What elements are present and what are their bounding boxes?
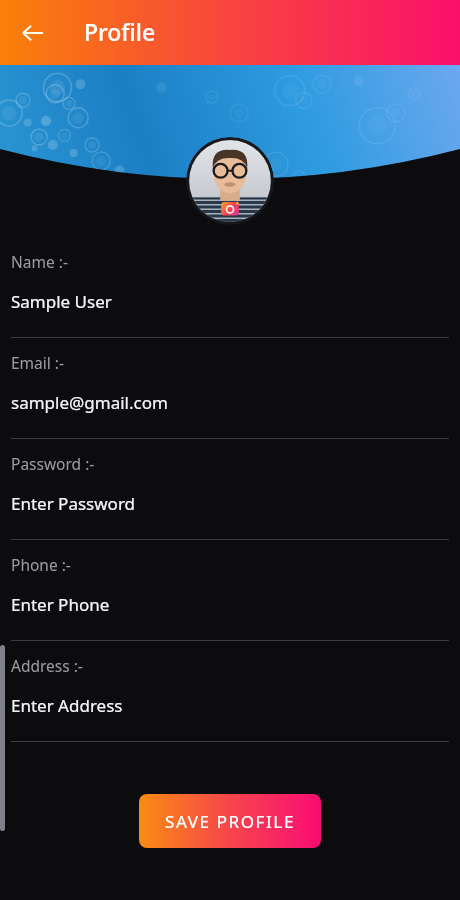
staticText: SAVE PROFILE [165, 810, 295, 833]
button[interactable]: Address :- [0, 655, 460, 756]
button[interactable]: Email :- [0, 352, 460, 453]
staticText: Sample User [11, 290, 112, 313]
button[interactable]: Back [12, 12, 54, 54]
button[interactable]: Phone :- [0, 554, 460, 655]
staticText: Phone :- [11, 554, 71, 575]
button[interactable]: Password :- [0, 453, 460, 554]
staticText: Profile [84, 16, 156, 47]
staticText: Password :- [11, 453, 95, 474]
staticText: Enter Password [11, 492, 136, 515]
button[interactable]: Name :- [0, 251, 460, 352]
staticText: Email :- [11, 352, 64, 373]
staticText: Enter Phone [11, 593, 110, 616]
button[interactable]: Change profile photo [186, 137, 274, 225]
staticText: Address :- [11, 655, 83, 676]
button[interactable]: SAVE PROFILE [139, 794, 321, 848]
staticText: Name :- [11, 251, 68, 272]
staticText: Enter Address [11, 694, 123, 717]
staticText: sample@gmail.com [11, 391, 168, 414]
